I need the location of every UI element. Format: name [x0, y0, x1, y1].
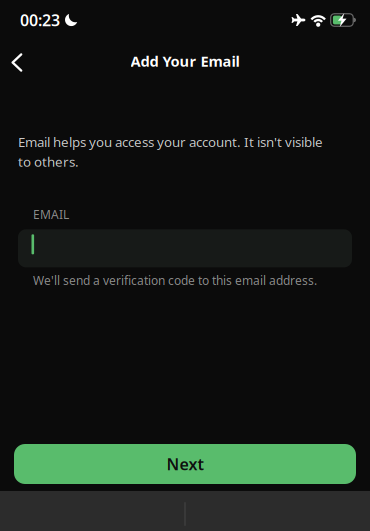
staticText: Add Your Email [130, 51, 239, 71]
button[interactable]: Back [0, 43, 38, 76]
staticText: 00:23 [20, 9, 60, 31]
staticText: Email helps you access your account. It … [18, 133, 323, 170]
button[interactable]: Next [14, 444, 356, 484]
staticText: We'll send a verification code to this e… [33, 272, 317, 288]
staticText: EMAIL [33, 206, 69, 222]
staticText: Next [166, 453, 203, 475]
